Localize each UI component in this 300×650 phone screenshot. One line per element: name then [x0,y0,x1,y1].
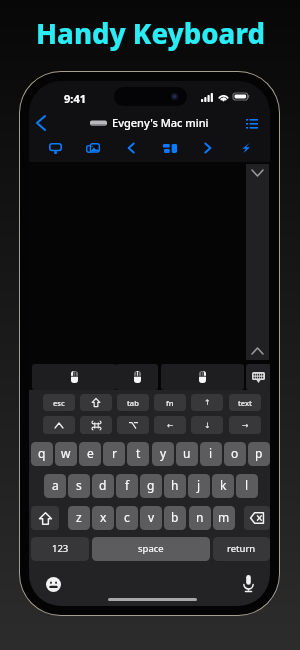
staticText: c [124,509,130,525]
staticText: tab [127,398,139,408]
staticText: u [183,445,191,461]
staticText: 9:41 [64,91,86,106]
button[interactable]: p [248,442,270,466]
button[interactable]: s [68,474,90,498]
button[interactable]: tab [117,394,149,411]
button[interactable]: d [92,474,114,498]
button[interactable]: w [55,442,77,466]
button[interactable]: c [116,506,138,530]
staticText: a [52,477,59,493]
staticText: l [245,477,249,493]
button[interactable]: ↓ [191,416,223,434]
button[interactable]: Left click [32,364,117,390]
button[interactable]: return [213,537,270,561]
button[interactable]: space [92,537,210,561]
button[interactable]: esc [43,394,75,411]
button[interactable]: Layout [158,136,182,160]
button[interactable]: Emoji [41,572,65,596]
button[interactable]: List [240,111,264,135]
staticText: q [38,445,46,461]
button[interactable]: q [31,442,53,466]
button[interactable]: o [224,442,246,466]
staticText: j [197,477,201,493]
button[interactable]: Scroll [246,164,269,360]
button[interactable]: b [164,506,186,530]
staticText: v [148,509,155,525]
button[interactable]: r [103,442,125,466]
staticText: y [160,445,167,461]
button[interactable]: ← [154,416,186,434]
staticText: x [100,509,107,525]
staticText: p [255,445,263,461]
staticText: return [227,542,256,555]
staticText: b [171,509,179,525]
button[interactable]: Power [234,136,258,160]
button[interactable]: Photos [81,136,105,160]
button[interactable]: z [68,506,90,530]
staticText: Evgeny's Mac mini [112,115,209,130]
button[interactable]: y [152,442,174,466]
button[interactable]: text [229,394,261,411]
staticText: t [136,445,141,461]
staticText: k [220,477,227,493]
staticText: ↑ [204,398,211,407]
button[interactable]: shift [80,394,112,411]
button[interactable]: a [44,474,66,498]
staticText: → [242,421,249,430]
button[interactable]: Next [196,136,220,160]
staticText: s [76,477,82,493]
button[interactable]: Back [29,111,53,135]
button[interactable]: t [127,442,149,466]
button[interactable]: ↑ [191,394,223,411]
button[interactable]: u [176,442,198,466]
staticText: w [61,445,71,461]
staticText: fn [166,398,174,408]
button[interactable]: g [140,474,162,498]
staticText: r [112,445,117,461]
button[interactable]: Display [43,136,67,160]
staticText: h [171,477,179,493]
button[interactable]: h [164,474,186,498]
button[interactable]: f [116,474,138,498]
button[interactable]: Shift [31,506,59,530]
button[interactable]: n [189,506,211,530]
button[interactable]: l [236,474,258,498]
button[interactable]: fn [154,394,186,411]
staticText: Handy Keyboard [36,15,265,52]
staticText: text [238,398,252,408]
staticText: z [76,509,82,525]
button[interactable]: 123 [31,537,89,561]
staticText: d [99,477,107,493]
button[interactable]: x [92,506,114,530]
staticText: ↓ [204,421,211,430]
button[interactable]: Show keyboard [246,364,270,390]
staticText: 123 [52,542,69,555]
button[interactable]: Middle click [116,364,158,390]
staticText: o [231,445,239,461]
staticText: m [218,509,230,525]
staticText: g [147,477,155,493]
staticText: i [209,445,213,461]
staticText: esc [53,398,65,408]
button[interactable]: i [200,442,222,466]
button[interactable]: Backspace [244,506,270,530]
button[interactable]: opt [117,416,149,434]
button[interactable]: v [140,506,162,530]
button[interactable]: Dictation [236,571,260,595]
button[interactable]: Right click [161,364,244,390]
staticText: f [125,477,130,493]
button[interactable]: → [229,416,261,434]
button[interactable]: m [213,506,235,530]
button[interactable]: j [188,474,210,498]
button[interactable]: k [212,474,234,498]
staticText: space [138,542,164,555]
button[interactable]: cmd [80,416,112,434]
staticText: n [196,509,204,525]
button[interactable]: ctrl [43,416,75,434]
staticText: e [87,445,94,461]
staticText: ← [167,421,174,430]
button[interactable]: e [79,442,101,466]
button[interactable]: Previous [119,136,143,160]
